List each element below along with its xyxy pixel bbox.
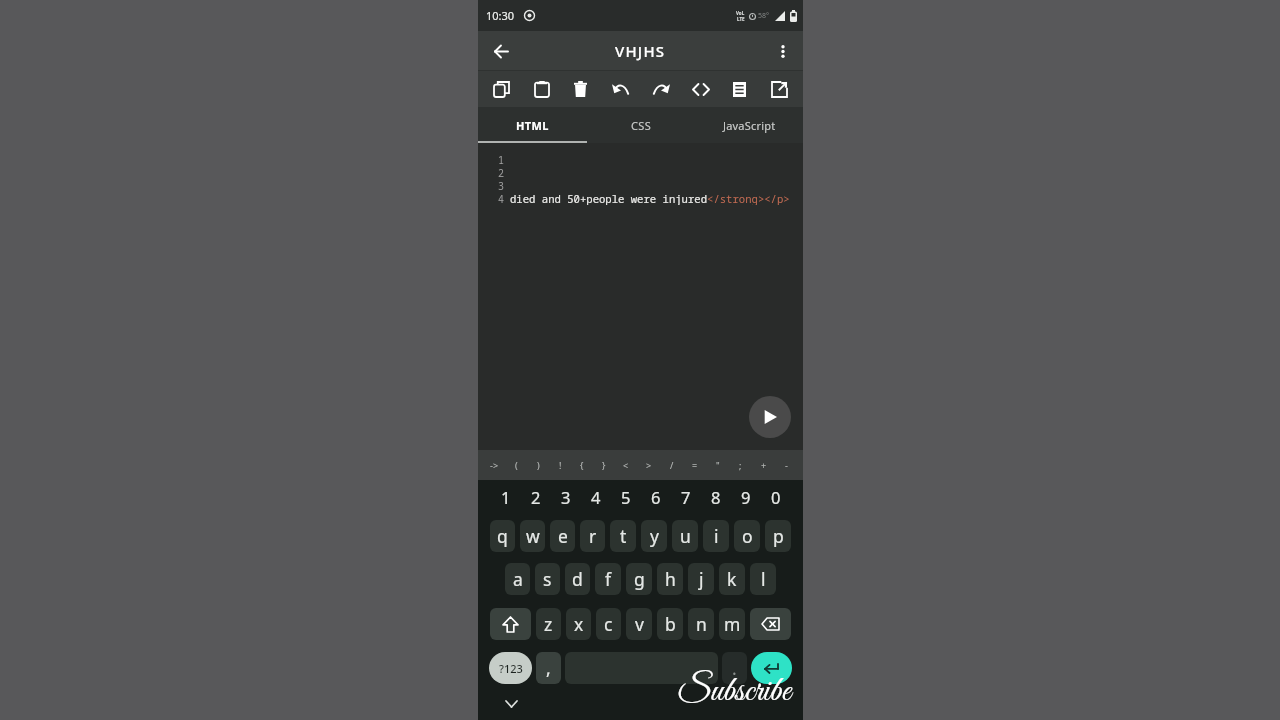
staticText: 2 [531,486,541,508]
staticText: ( [515,459,518,471]
button[interactable]: s [535,563,560,595]
button[interactable]: + [752,450,775,480]
button[interactable] [482,71,521,107]
button[interactable] [750,608,791,640]
button[interactable]: j [688,563,714,595]
button[interactable]: ( [505,450,527,480]
button[interactable]: z [536,608,561,640]
button[interactable] [751,652,792,684]
button[interactable]: { [571,450,593,480]
button[interactable]: ?123 [489,652,532,684]
button[interactable]: ! [549,450,571,480]
staticText: } [602,459,606,471]
staticText: 4 [591,486,601,508]
staticText: z [544,612,553,636]
staticText: -> [490,459,499,471]
button[interactable]: > [637,450,660,480]
staticText: t [620,524,627,548]
staticText: 3 [498,179,504,192]
button[interactable] [522,71,561,107]
staticText: e [558,524,568,548]
button[interactable]: v [626,608,652,640]
button[interactable]: ) [527,450,549,480]
button[interactable]: 8 [701,480,731,513]
button[interactable]: " [706,450,729,480]
staticText: 9 [741,486,751,508]
button[interactable]: < [615,450,637,480]
button[interactable]: -> [483,450,505,480]
button[interactable]: HTML [478,107,587,143]
button[interactable]: 6 [641,480,671,513]
button[interactable] [749,396,791,438]
button[interactable]: t [610,520,636,552]
button[interactable] [641,71,680,107]
button[interactable]: . [722,652,747,684]
button[interactable]: h [657,563,683,595]
button[interactable]: u [672,520,698,552]
button[interactable]: 9 [731,480,761,513]
button[interactable]: m [719,608,745,640]
button[interactable]: d [565,563,590,595]
button[interactable]: w [520,520,545,552]
button[interactable]: f [595,563,621,595]
button[interactable] [490,608,531,640]
staticText: n [696,612,707,636]
button[interactable]: p [765,520,791,552]
button[interactable] [490,40,512,62]
button[interactable]: = [683,450,706,480]
button[interactable]: o [734,520,760,552]
button[interactable]: n [688,608,714,640]
button[interactable]: 7 [671,480,701,513]
button[interactable] [773,41,793,61]
staticText: b [665,612,676,636]
button[interactable]: , [536,652,561,684]
button[interactable]: 5 [611,480,641,513]
button[interactable]: 4 [581,480,611,513]
button[interactable]: JavaScript [695,107,803,143]
button[interactable]: - [775,450,798,480]
button[interactable]: CSS [587,107,695,143]
button[interactable]: a [505,563,530,595]
button[interactable]: 2 [521,480,551,513]
staticText: HTML [516,118,549,133]
staticText: 8 [711,486,721,508]
button[interactable]: ; [729,450,752,480]
staticText: r [589,524,597,548]
button[interactable]: g [626,563,652,595]
button[interactable]: l [750,563,776,595]
button[interactable] [561,71,600,107]
button[interactable] [565,652,718,684]
button[interactable]: k [719,563,745,595]
staticText: ; [739,459,742,471]
staticText: 1 [501,486,511,508]
button[interactable]: y [641,520,667,552]
staticText: 0 [771,486,781,508]
staticText: Subscribe [677,669,791,714]
button[interactable]: x [566,608,591,640]
staticText: c [604,612,613,636]
staticText: 2 [498,166,504,179]
button[interactable] [681,71,720,107]
button[interactable]: q [490,520,515,552]
staticText: l [761,567,766,591]
button[interactable]: e [550,520,575,552]
button[interactable] [720,71,759,107]
staticText: w [526,524,540,548]
button[interactable]: c [596,608,621,640]
button[interactable]: 0 [761,480,791,513]
button[interactable] [760,71,799,107]
button[interactable]: 1 [490,480,521,513]
button[interactable]: / [660,450,683,480]
button[interactable]: r [580,520,605,552]
button[interactable]: i [703,520,729,552]
staticText: ! [559,459,562,471]
staticText: f [605,567,612,591]
button[interactable] [504,697,518,711]
staticText: / [670,459,674,471]
button[interactable]: } [593,450,615,480]
button[interactable] [601,71,640,107]
button[interactable]: b [657,608,683,640]
staticText: . [732,656,737,680]
button[interactable]: 3 [551,480,581,513]
staticText: d [572,567,583,591]
